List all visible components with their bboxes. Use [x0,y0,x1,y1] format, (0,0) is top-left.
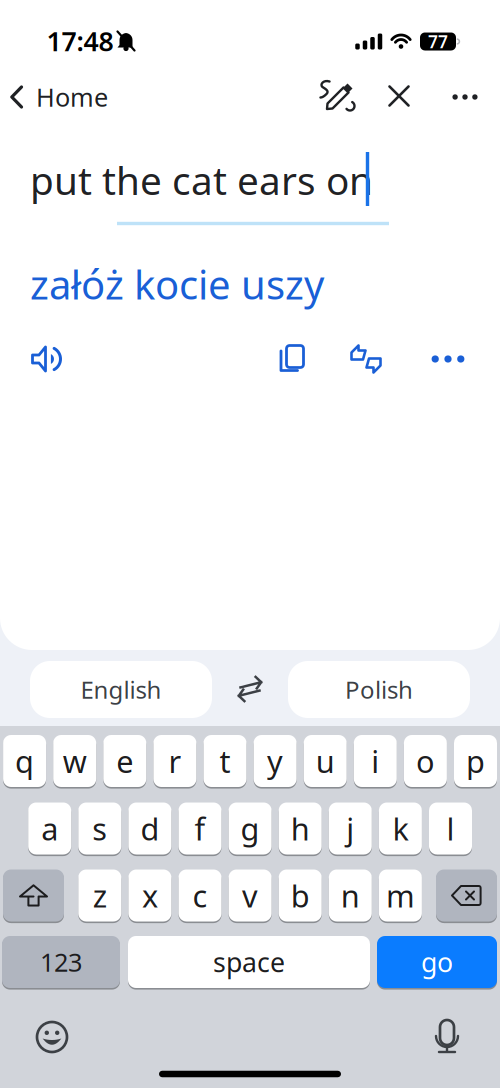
staticText: v [242,875,258,916]
button[interactable] [342,337,390,381]
staticText: c [192,875,207,916]
button[interactable] [25,337,69,381]
button[interactable]: e [103,733,146,788]
button[interactable] [30,1015,74,1059]
button[interactable] [426,337,470,381]
button[interactable]: f [178,801,221,856]
staticText: Home [36,80,108,114]
staticText: a [41,808,58,849]
button[interactable]: go [377,934,497,989]
button[interactable] [443,75,487,119]
staticText: załóż kocie uszy [30,257,324,310]
staticText: Polish [345,674,413,705]
staticText: 123 [40,945,82,979]
button[interactable]: u [304,733,347,788]
button[interactable] [270,337,314,381]
button[interactable]: d [128,801,171,856]
button[interactable]: z [78,868,121,923]
button[interactable] [315,74,359,118]
button[interactable]: r [153,733,196,788]
button[interactable]: Home [10,75,170,119]
staticText: x [142,875,158,916]
button[interactable]: p [454,733,497,788]
button[interactable]: space [128,934,370,989]
button[interactable]: q [3,733,46,788]
staticText: space [213,944,285,980]
staticText: u [316,741,335,781]
staticText: p [466,741,485,781]
staticText: m [386,875,415,916]
button[interactable]: b [279,868,322,923]
button[interactable]: s [78,801,121,856]
staticText: 77 [428,30,448,53]
button[interactable]: o [404,733,447,788]
button[interactable] [425,1014,469,1058]
button[interactable]: Polish [288,661,470,718]
button[interactable] [436,868,497,923]
button[interactable] [228,667,272,711]
staticText: English [80,674,161,705]
staticText: s [92,808,107,849]
button[interactable]: h [279,801,322,856]
staticText: y [267,741,283,781]
staticText: g [241,808,260,849]
button[interactable]: English [30,661,212,718]
button[interactable] [3,868,64,923]
button[interactable]: 123 [2,934,120,989]
staticText: k [392,808,408,849]
button[interactable]: i [354,733,397,788]
button[interactable]: l [429,801,472,856]
staticText: go [421,944,453,980]
staticText: t [219,741,230,781]
staticText: n [341,875,360,916]
button[interactable]: k [379,801,422,856]
staticText: l [446,808,454,849]
button[interactable]: t [203,733,246,788]
staticText: e [116,741,133,781]
button[interactable]: w [53,733,96,788]
staticText: q [15,741,34,781]
staticText: b [291,875,310,916]
button[interactable]: g [229,801,272,856]
staticText: o [416,741,435,781]
staticText: i [371,741,379,781]
button[interactable]: v [229,868,272,923]
button[interactable]: n [329,868,372,923]
staticText: r [168,741,181,781]
button[interactable]: x [128,868,171,923]
button[interactable]: m [379,868,422,923]
button[interactable]: y [254,733,297,788]
button[interactable]: j [329,801,372,856]
staticText: f [194,808,205,849]
staticText: w [63,741,87,781]
button[interactable]: a [28,801,71,856]
staticText: d [140,808,159,849]
button[interactable]: c [178,868,221,923]
staticText: put the cat ears on [30,154,373,206]
staticText: z [93,875,107,916]
button[interactable] [377,74,421,118]
staticText: 17:48 [46,23,113,59]
staticText: h [291,808,310,849]
staticText: j [346,808,354,849]
